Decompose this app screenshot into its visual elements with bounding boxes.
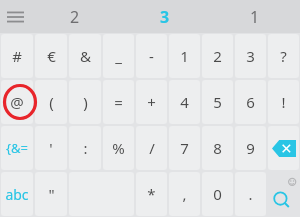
button[interactable]: ! xyxy=(268,80,299,124)
button[interactable]: . xyxy=(235,172,266,216)
staticText: € xyxy=(47,46,56,66)
staticText: @ xyxy=(10,92,24,112)
button[interactable]: € xyxy=(35,34,67,78)
button[interactable]: ' xyxy=(35,126,67,170)
staticText: , xyxy=(182,184,187,204)
button[interactable]: 3 xyxy=(235,34,266,78)
button[interactable]: 5 xyxy=(202,80,233,124)
staticText: . xyxy=(248,184,253,204)
button[interactable]: * xyxy=(136,172,167,216)
button[interactable]: / xyxy=(136,126,167,170)
button[interactable]: abc xyxy=(1,172,33,216)
button[interactable]: # xyxy=(1,34,33,78)
staticText: 1 xyxy=(180,46,189,66)
staticText: 2 xyxy=(70,6,80,28)
button[interactable]: 1 xyxy=(210,0,300,33)
staticText: ! xyxy=(281,92,286,112)
staticText: 1 xyxy=(250,6,260,28)
staticText: # xyxy=(12,46,22,66)
button[interactable]: 6 xyxy=(235,80,266,124)
staticText: 6 xyxy=(246,92,255,112)
staticText: 0 xyxy=(213,184,222,204)
staticText: abc xyxy=(5,185,29,204)
staticText: : xyxy=(83,138,88,158)
staticText: % xyxy=(112,138,125,158)
button[interactable]: 9 xyxy=(235,126,266,170)
staticText: / xyxy=(149,138,155,158)
staticText: 3 xyxy=(246,46,255,66)
button[interactable]: Backspace xyxy=(268,126,299,170)
button[interactable]: , xyxy=(169,172,200,216)
staticText: 2 xyxy=(213,46,222,66)
staticText: {&= xyxy=(6,139,28,157)
staticText: _ xyxy=(115,46,122,66)
staticText: 3 xyxy=(160,6,170,28)
button[interactable]: ( xyxy=(35,80,67,124)
staticText: 7 xyxy=(180,138,189,158)
button[interactable]: : xyxy=(69,126,101,170)
button[interactable]: = xyxy=(103,80,134,124)
button[interactable]: 8 xyxy=(202,126,233,170)
button[interactable]: - xyxy=(136,34,167,78)
button[interactable]: 3 xyxy=(120,0,210,33)
staticText: 8 xyxy=(213,138,222,158)
button[interactable]: & xyxy=(69,34,101,78)
staticText: ' xyxy=(49,138,53,158)
staticText: ( xyxy=(49,92,54,112)
button[interactable]: Search xyxy=(268,172,299,216)
button[interactable]: Menu xyxy=(0,0,30,33)
button[interactable]: % xyxy=(103,126,134,170)
staticText: " xyxy=(48,184,55,204)
button[interactable]: ? xyxy=(268,34,299,78)
button[interactable]: " xyxy=(35,172,67,216)
button[interactable]: ) xyxy=(69,80,101,124)
button[interactable]: 0 xyxy=(202,172,233,216)
button[interactable]: 1 xyxy=(169,34,200,78)
button[interactable]: 4 xyxy=(169,80,200,124)
button[interactable]: 2 xyxy=(202,34,233,78)
button[interactable]: {&= xyxy=(1,126,33,170)
button[interactable]: @ xyxy=(1,80,33,124)
staticText: 4 xyxy=(180,92,189,112)
staticText: 5 xyxy=(213,92,222,112)
staticText: - xyxy=(149,46,154,66)
staticText: + xyxy=(147,92,156,112)
button[interactable]: 7 xyxy=(169,126,200,170)
staticText: & xyxy=(80,46,91,66)
staticText: ) xyxy=(83,92,88,112)
button[interactable]: 2 xyxy=(30,0,120,33)
staticText: * xyxy=(147,184,156,204)
staticText: ? xyxy=(280,46,287,66)
button[interactable]: + xyxy=(136,80,167,124)
button[interactable]: _ xyxy=(103,34,134,78)
staticText: = xyxy=(114,92,123,112)
staticText: 9 xyxy=(246,138,255,158)
